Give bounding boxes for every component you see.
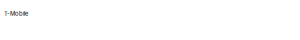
staticText: T-Mobile (4, 10, 28, 17)
